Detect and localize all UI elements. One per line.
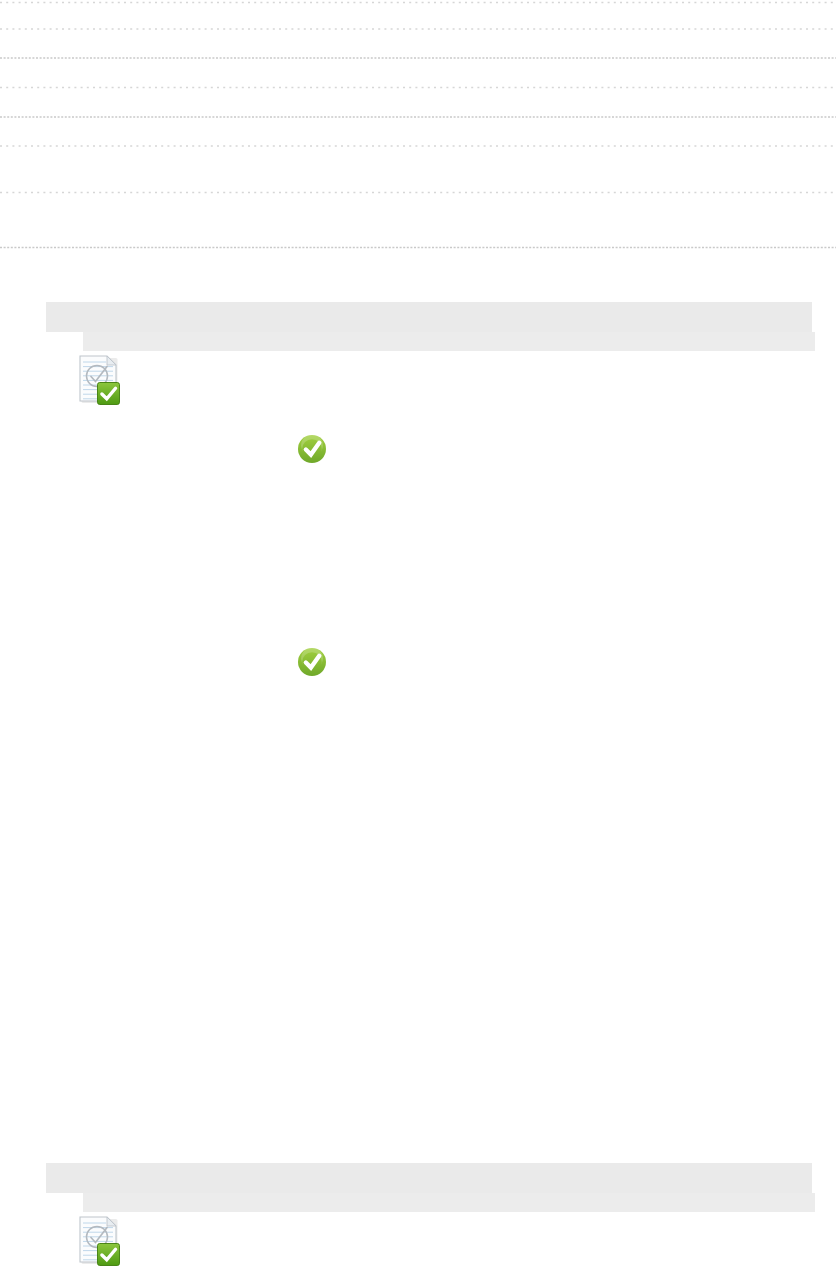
- button[interactable]: Completed: [298, 435, 326, 463]
- button[interactable]: Completed: [298, 648, 326, 676]
- button[interactable]: Approved document: [78, 355, 134, 407]
- button[interactable]: Approved document: [78, 1216, 134, 1268]
